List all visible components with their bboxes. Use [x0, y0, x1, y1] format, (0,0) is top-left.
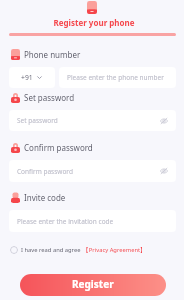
staticText: +91 [21, 73, 33, 82]
button[interactable]: I have read and agree [10, 245, 146, 254]
staticText: Please enter the invitation code [17, 217, 114, 226]
staticText: I have read and agree [21, 246, 81, 254]
staticText: Confirm password [17, 167, 73, 176]
staticText: Set password [24, 92, 75, 103]
staticText: Please enter the phone number [67, 73, 164, 82]
staticText: Invite code [24, 192, 66, 203]
staticText: Register your phone [2, 17, 184, 28]
staticText: 【Privacy Agreement】 [83, 246, 146, 254]
staticText: Set password [17, 116, 58, 125]
button[interactable]: Register [20, 274, 166, 296]
button[interactable]: +91 [9, 67, 55, 88]
button[interactable]: Please enter the phone number [59, 67, 176, 88]
button[interactable]: Set password [9, 110, 176, 131]
staticText: Register [72, 277, 114, 291]
staticText: Phone number [24, 49, 81, 60]
button[interactable]: Confirm password [9, 160, 176, 182]
staticText: Confirm password [24, 142, 93, 153]
button[interactable]: Show password [160, 118, 168, 124]
button[interactable]: Show password [160, 168, 168, 174]
button[interactable]: Please enter the invitation code [9, 210, 176, 232]
